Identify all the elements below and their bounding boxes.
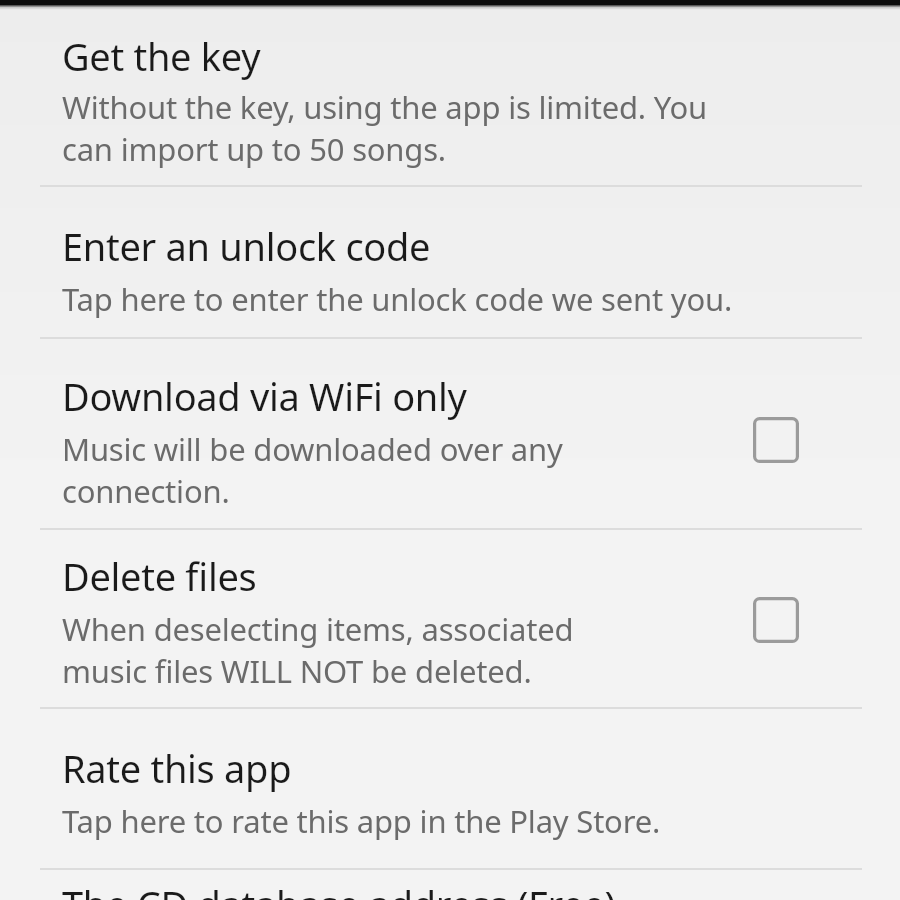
- staticText: When deselecting items, associated: [62, 608, 574, 650]
- staticText: can import up to 50 songs.: [62, 128, 446, 170]
- staticText: connection.: [62, 470, 230, 512]
- staticText: Without the key, using the app is limite…: [62, 86, 708, 128]
- staticText: Music will be downloaded over any: [62, 428, 563, 470]
- staticText: Delete files: [62, 550, 257, 602]
- button[interactable]: [0, 530, 900, 707]
- staticText: The CD database address (Free): [62, 878, 616, 900]
- staticText: Get the key: [62, 30, 261, 82]
- button[interactable]: [0, 187, 900, 337]
- staticText: Enter an unlock code: [62, 220, 431, 272]
- staticText: Download via WiFi only: [62, 370, 467, 422]
- button[interactable]: Delete files: [742, 586, 810, 654]
- staticText: Rate this app: [62, 742, 292, 794]
- staticText: Tap here to enter the unlock code we sen…: [62, 278, 733, 320]
- button[interactable]: Download via WiFi only: [742, 406, 810, 474]
- button[interactable]: [0, 10, 900, 185]
- staticText: Tap here to rate this app in the Play St…: [62, 800, 661, 842]
- button[interactable]: [0, 870, 900, 900]
- staticText: music files WILL NOT be deleted.: [62, 650, 532, 692]
- button[interactable]: [0, 709, 900, 868]
- button[interactable]: [0, 339, 900, 528]
